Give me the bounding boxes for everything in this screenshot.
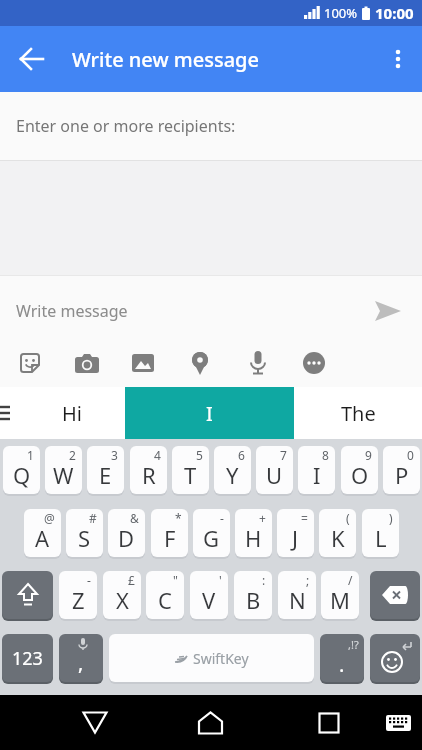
staticText: H (245, 523, 262, 553)
button[interactable] (374, 26, 422, 92)
staticText: Y (226, 460, 239, 490)
staticText: P (395, 460, 409, 490)
staticText: R (142, 460, 156, 490)
staticText: Z (72, 585, 85, 615)
button[interactable]: B (234, 571, 272, 619)
staticText: / (348, 572, 353, 588)
button[interactable]: The (294, 387, 422, 439)
button[interactable] (0, 387, 18, 439)
staticText: ,!? (348, 637, 359, 652)
button[interactable]: D (108, 509, 145, 557)
staticText: N (289, 585, 306, 615)
staticText: Enter one or more recipients: (16, 115, 236, 137)
button[interactable] (370, 634, 420, 682)
button[interactable] (179, 341, 221, 385)
staticText: A (35, 523, 50, 553)
staticText: , (78, 649, 84, 676)
staticText: 3 (111, 447, 118, 463)
staticText: 9 (365, 447, 372, 463)
button[interactable] (378, 695, 418, 750)
staticText: X (116, 585, 129, 615)
button[interactable] (122, 341, 164, 385)
staticText: 10:00 (375, 3, 414, 23)
button[interactable]: R (130, 446, 167, 494)
button[interactable] (2, 571, 53, 619)
staticText: 7 (280, 447, 287, 463)
button[interactable]: U (256, 446, 293, 494)
button[interactable]: I (125, 387, 294, 439)
button[interactable]: H (235, 509, 272, 557)
staticText: D (118, 523, 135, 553)
staticText: 6 (238, 447, 245, 463)
staticText: L (375, 523, 387, 553)
staticText: 5 (196, 447, 203, 463)
staticText: ' (219, 572, 222, 588)
staticText: I (313, 460, 321, 490)
button[interactable] (305, 695, 353, 750)
button[interactable]: L (362, 509, 399, 557)
staticText: The (341, 400, 376, 427)
button[interactable]: V (190, 571, 228, 619)
button[interactable]: . (320, 634, 364, 682)
staticText: 4 (154, 447, 161, 463)
button[interactable] (237, 341, 279, 385)
button[interactable]: C (146, 571, 184, 619)
button[interactable]: P (383, 446, 420, 494)
button[interactable] (370, 296, 406, 326)
staticText: C (158, 585, 172, 615)
button[interactable]: S (66, 509, 103, 557)
button[interactable]: Enter one or more recipients: (0, 92, 422, 160)
button[interactable]: X (103, 571, 141, 619)
button[interactable]: Hi (18, 387, 125, 439)
button[interactable] (71, 695, 119, 750)
staticText: ; (306, 572, 310, 588)
staticText: £ (128, 572, 135, 588)
button[interactable]: T (172, 446, 209, 494)
staticText: # (89, 510, 97, 526)
staticText: " (173, 572, 178, 588)
staticText: 0 (407, 447, 414, 463)
button[interactable] (0, 26, 64, 92)
button[interactable]: SwiftKey (109, 634, 314, 682)
button[interactable] (66, 341, 108, 385)
button[interactable]: Z (59, 571, 97, 619)
button[interactable]: F (151, 509, 188, 557)
staticText: U (266, 460, 283, 490)
button[interactable]: M (321, 571, 359, 619)
staticText: 1 (27, 447, 34, 463)
button[interactable]: K (319, 509, 356, 557)
button[interactable]: I (298, 446, 335, 494)
button[interactable]: Q (3, 446, 40, 494)
staticText: ( (346, 510, 350, 526)
staticText: + (259, 510, 266, 526)
staticText: * (175, 510, 182, 526)
staticText: T (184, 460, 197, 490)
button[interactable] (186, 695, 234, 750)
staticText: - (87, 572, 91, 588)
button[interactable]: E (87, 446, 124, 494)
button[interactable]: Write message (16, 296, 370, 326)
staticText: F (164, 523, 176, 553)
button[interactable] (293, 341, 335, 385)
staticText: S (78, 523, 91, 553)
button[interactable]: Y (214, 446, 251, 494)
button[interactable]: N (278, 571, 316, 619)
staticText: G (203, 523, 220, 553)
button[interactable]: G (193, 509, 230, 557)
staticText: B (246, 585, 261, 615)
staticText: Hi (62, 400, 82, 427)
staticText: M (330, 585, 350, 615)
button[interactable]: W (45, 446, 82, 494)
staticText: 100% (324, 4, 358, 22)
button[interactable] (9, 341, 51, 385)
button[interactable]: 123 (2, 634, 53, 682)
staticText: 123 (12, 646, 43, 671)
button[interactable]: O (341, 446, 378, 494)
button[interactable] (370, 571, 420, 619)
button[interactable]: , (59, 634, 103, 682)
button[interactable]: J (277, 509, 314, 557)
button[interactable]: A (24, 509, 61, 557)
staticText: 8 (322, 447, 329, 463)
staticText: Write new message (72, 46, 259, 73)
staticText: ) (389, 510, 393, 526)
